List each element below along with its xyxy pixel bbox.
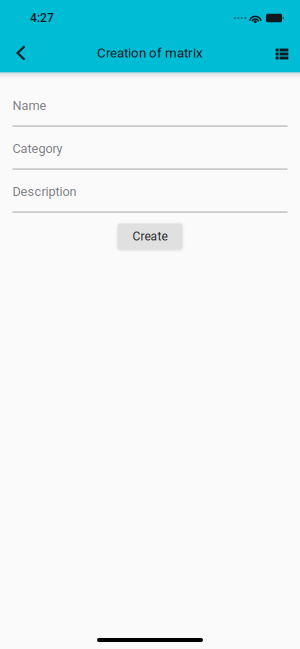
staticText: Category xyxy=(12,141,62,156)
staticText: Creation of matrix xyxy=(97,45,203,61)
button[interactable]: Back xyxy=(2,36,38,72)
staticText: Name xyxy=(12,98,46,113)
staticText: Description xyxy=(12,184,76,199)
staticText: 4:27 xyxy=(30,11,54,25)
button[interactable]: Create xyxy=(118,223,182,249)
button[interactable]: Menu xyxy=(264,36,300,72)
staticText: Create xyxy=(132,229,167,244)
